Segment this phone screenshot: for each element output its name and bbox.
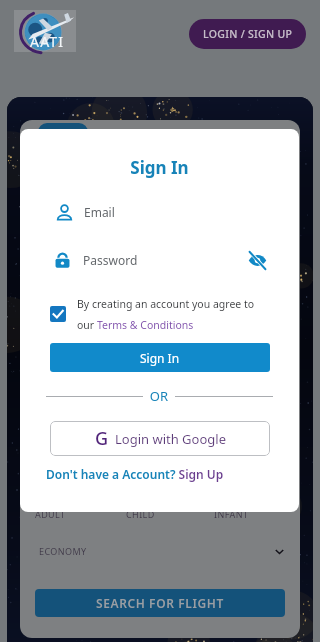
staticText: Don't have a Account? Sign Up — [46, 466, 224, 482]
button[interactable]: ECONOMY — [39, 543, 285, 559]
button[interactable]: G — [50, 421, 270, 456]
staticText: G — [95, 426, 109, 451]
button[interactable]: Don't have a Account? Sign Up — [46, 466, 224, 482]
staticText: AATI — [30, 32, 65, 51]
staticText: LOGIN / SIGN UP — [203, 27, 293, 41]
button[interactable]: LOGIN / SIGN UP — [189, 19, 306, 49]
staticText: SEARCH FOR FLIGHT — [96, 595, 224, 611]
staticText: Sign In — [20, 156, 299, 179]
staticText: INFANT — [214, 508, 249, 520]
button[interactable]: AATI logo — [14, 10, 76, 52]
staticText: Login with Google — [115, 430, 226, 448]
button[interactable]: Show password — [244, 247, 270, 273]
staticText: ADULT — [35, 508, 66, 520]
staticText: our Terms & Conditions — [77, 318, 194, 332]
button[interactable]: SEARCH FOR FLIGHT — [35, 589, 285, 617]
button[interactable]: Email — [20, 199, 299, 225]
staticText: Sign In — [140, 350, 180, 366]
button[interactable]: By creating an account you agree to — [20, 297, 299, 332]
staticText: Password — [83, 252, 138, 268]
button[interactable]: Sign In — [50, 343, 270, 372]
staticText: CHILD — [126, 508, 155, 520]
staticText: Email — [84, 204, 115, 220]
staticText: By creating an account you agree to — [77, 297, 255, 311]
staticText: ECONOMY — [39, 545, 87, 557]
staticText: OR — [143, 387, 175, 405]
